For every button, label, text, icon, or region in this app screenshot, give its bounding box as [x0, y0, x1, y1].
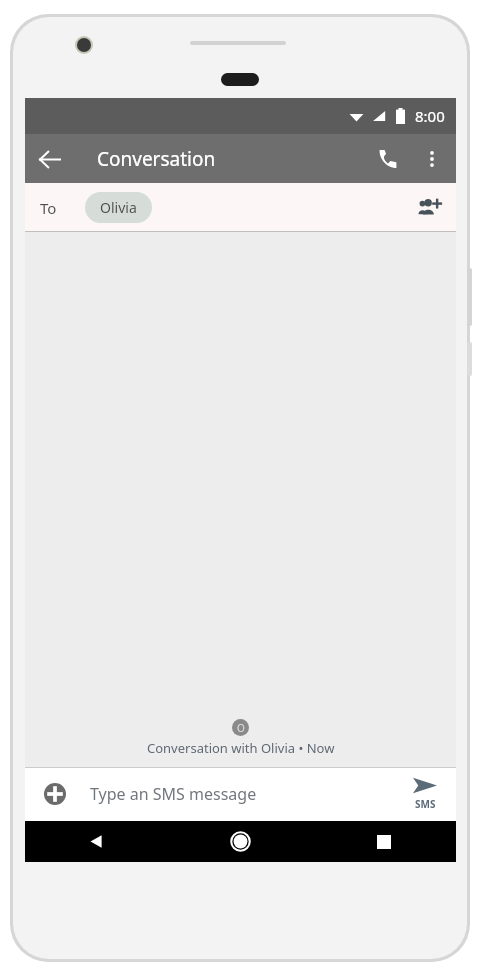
staticText: O: [237, 721, 245, 735]
staticText: To: [40, 198, 57, 218]
button[interactable]: Home: [168, 821, 312, 862]
button[interactable]: Send SMS: [394, 767, 456, 821]
button[interactable]: Back: [25, 135, 73, 183]
staticText: 8:00: [415, 106, 445, 126]
button[interactable]: Call: [364, 135, 412, 183]
staticText: Conversation with Olivia • Now: [147, 739, 335, 757]
button[interactable]: More options: [412, 139, 452, 179]
staticText: Olivia: [100, 198, 137, 217]
button[interactable]: Olivia: [85, 192, 152, 223]
button[interactable]: Add recipients: [406, 185, 452, 231]
button[interactable]: Recent apps: [312, 821, 456, 862]
button[interactable]: Type an SMS message: [90, 783, 394, 805]
staticText: SMS: [415, 797, 436, 811]
staticText: Type an SMS message: [90, 783, 257, 805]
button[interactable]: Attach: [38, 777, 72, 811]
staticText: Conversation: [97, 146, 216, 172]
button[interactable]: Back: [25, 821, 168, 862]
